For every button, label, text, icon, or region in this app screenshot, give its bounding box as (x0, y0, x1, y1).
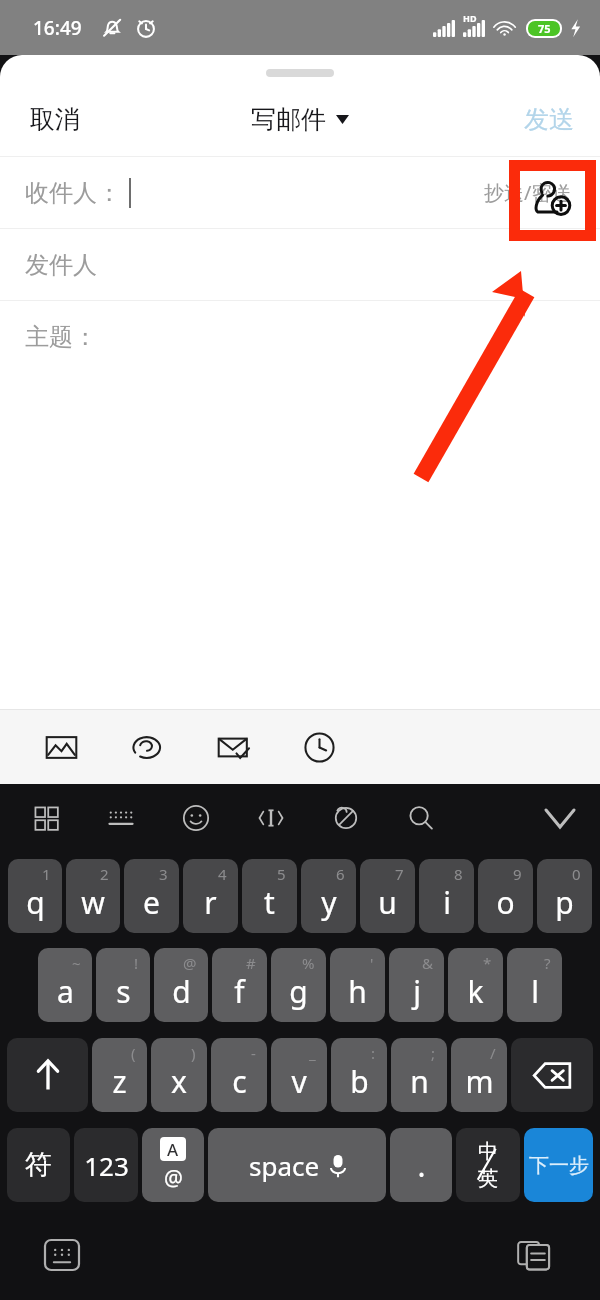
button[interactable]: Apps (8, 787, 83, 849)
staticText: @ (164, 1164, 183, 1193)
staticText: A (167, 1138, 179, 1161)
staticText: 主题： (25, 322, 97, 352)
button[interactable]: Search (383, 787, 458, 849)
staticText: 7 (395, 864, 404, 884)
staticText: 4 (218, 864, 227, 884)
button[interactable]: Clip (308, 787, 383, 849)
button[interactable]: 6 (301, 859, 356, 933)
staticText: 2 (100, 864, 109, 884)
button[interactable]: Emoji (158, 787, 233, 849)
staticText: d (172, 971, 191, 1012)
button[interactable]: # (212, 948, 267, 1022)
button[interactable]: @ (154, 948, 208, 1022)
button[interactable]: ? (507, 948, 562, 1022)
button[interactable]: 5 (242, 859, 297, 933)
button[interactable]: 写邮件 (235, 92, 365, 147)
button[interactable]: Recent (504, 1225, 564, 1285)
staticText: h (348, 971, 367, 1012)
staticText: w (81, 882, 105, 923)
staticText: 发送 (524, 104, 574, 135)
staticText: * (483, 953, 492, 973)
staticText: t (264, 882, 275, 923)
button[interactable]: Mark mail (190, 717, 276, 777)
button[interactable]: 中 英 (456, 1128, 520, 1202)
button[interactable]: Insert image (18, 717, 104, 777)
button[interactable]: 符 (7, 1128, 70, 1202)
staticText: n (410, 1061, 429, 1102)
staticText: ( (131, 1043, 136, 1063)
staticText: # (246, 953, 256, 973)
button[interactable]: Cursor (233, 787, 308, 849)
staticText: 8 (454, 864, 463, 884)
staticText: v (291, 1061, 307, 1102)
button[interactable]: space (208, 1128, 386, 1202)
button[interactable]: Hide keyboard (32, 1225, 92, 1285)
button[interactable]: 下一步 (524, 1128, 593, 1202)
button[interactable]: - (211, 1038, 267, 1112)
button[interactable]: : (331, 1038, 387, 1112)
button[interactable]: 发送 (498, 90, 600, 149)
button[interactable]: 7 (360, 859, 415, 933)
button[interactable]: 8 (419, 859, 474, 933)
staticText: 123 (84, 1148, 129, 1183)
staticText: ; (431, 1043, 436, 1063)
staticText: l (531, 971, 539, 1012)
staticText: 收件人： (25, 178, 121, 208)
staticText: 0 (572, 864, 581, 884)
staticText: 符 (25, 1148, 52, 1182)
button[interactable]: / (451, 1038, 507, 1112)
staticText: 5 (277, 864, 286, 884)
button[interactable]: Shift (7, 1038, 88, 1112)
button[interactable]: 9 (478, 859, 533, 933)
button[interactable]: ( (92, 1038, 147, 1112)
button[interactable]: ) (151, 1038, 207, 1112)
button[interactable]: 取消 (0, 90, 110, 149)
button[interactable]: 3 (124, 859, 179, 933)
button[interactable]: _ (271, 1038, 327, 1112)
staticText: % (302, 953, 315, 973)
button[interactable]: 2 (66, 859, 120, 933)
staticText: b (350, 1061, 369, 1102)
button[interactable]: 主题： (0, 301, 600, 372)
button[interactable]: Schedule send (276, 717, 362, 777)
button[interactable]: & (389, 948, 444, 1022)
staticText: space (249, 1148, 320, 1183)
staticText: a (57, 971, 74, 1012)
button[interactable]: 123 (74, 1128, 138, 1202)
staticText: 9 (513, 864, 522, 884)
staticText: ~ (72, 953, 81, 973)
button[interactable]: ! (96, 948, 150, 1022)
staticText: 写邮件 (251, 104, 326, 135)
staticText: 抄送/密送 (484, 179, 572, 206)
button[interactable]: Hide keyboard (532, 790, 588, 846)
button[interactable]: 发件人 (0, 229, 600, 300)
staticText: y (321, 882, 337, 923)
staticText: s (116, 971, 131, 1012)
staticText: ! (134, 953, 139, 973)
staticText: 下一步 (529, 1153, 589, 1178)
button[interactable]: 0 (537, 859, 592, 933)
button[interactable]: Keyboard layout (83, 787, 158, 849)
button[interactable]: % (271, 948, 326, 1022)
button[interactable]: ' (330, 948, 385, 1022)
staticText: o (496, 882, 515, 923)
button[interactable]: ~ (38, 948, 92, 1022)
staticText: 1 (42, 864, 51, 884)
button[interactable]: 1 (8, 859, 62, 933)
staticText: ' (370, 953, 374, 973)
button[interactable]: 4 (183, 859, 238, 933)
button[interactable]: Switch A and symbols (142, 1128, 204, 1202)
button[interactable]: . (390, 1128, 452, 1202)
button[interactable]: * (448, 948, 503, 1022)
button[interactable]: ; (391, 1038, 447, 1112)
staticText: 6 (336, 864, 345, 884)
staticText: i (443, 882, 451, 923)
staticText: q (26, 882, 45, 923)
button[interactable]: 收件人： (0, 157, 600, 228)
staticText: z (112, 1061, 127, 1102)
button[interactable]: Backspace (511, 1038, 593, 1112)
button[interactable]: Undo (104, 717, 190, 777)
other: Add recipient (533, 180, 573, 220)
staticText: . (417, 1145, 426, 1186)
staticText: 16:49 (33, 15, 82, 41)
